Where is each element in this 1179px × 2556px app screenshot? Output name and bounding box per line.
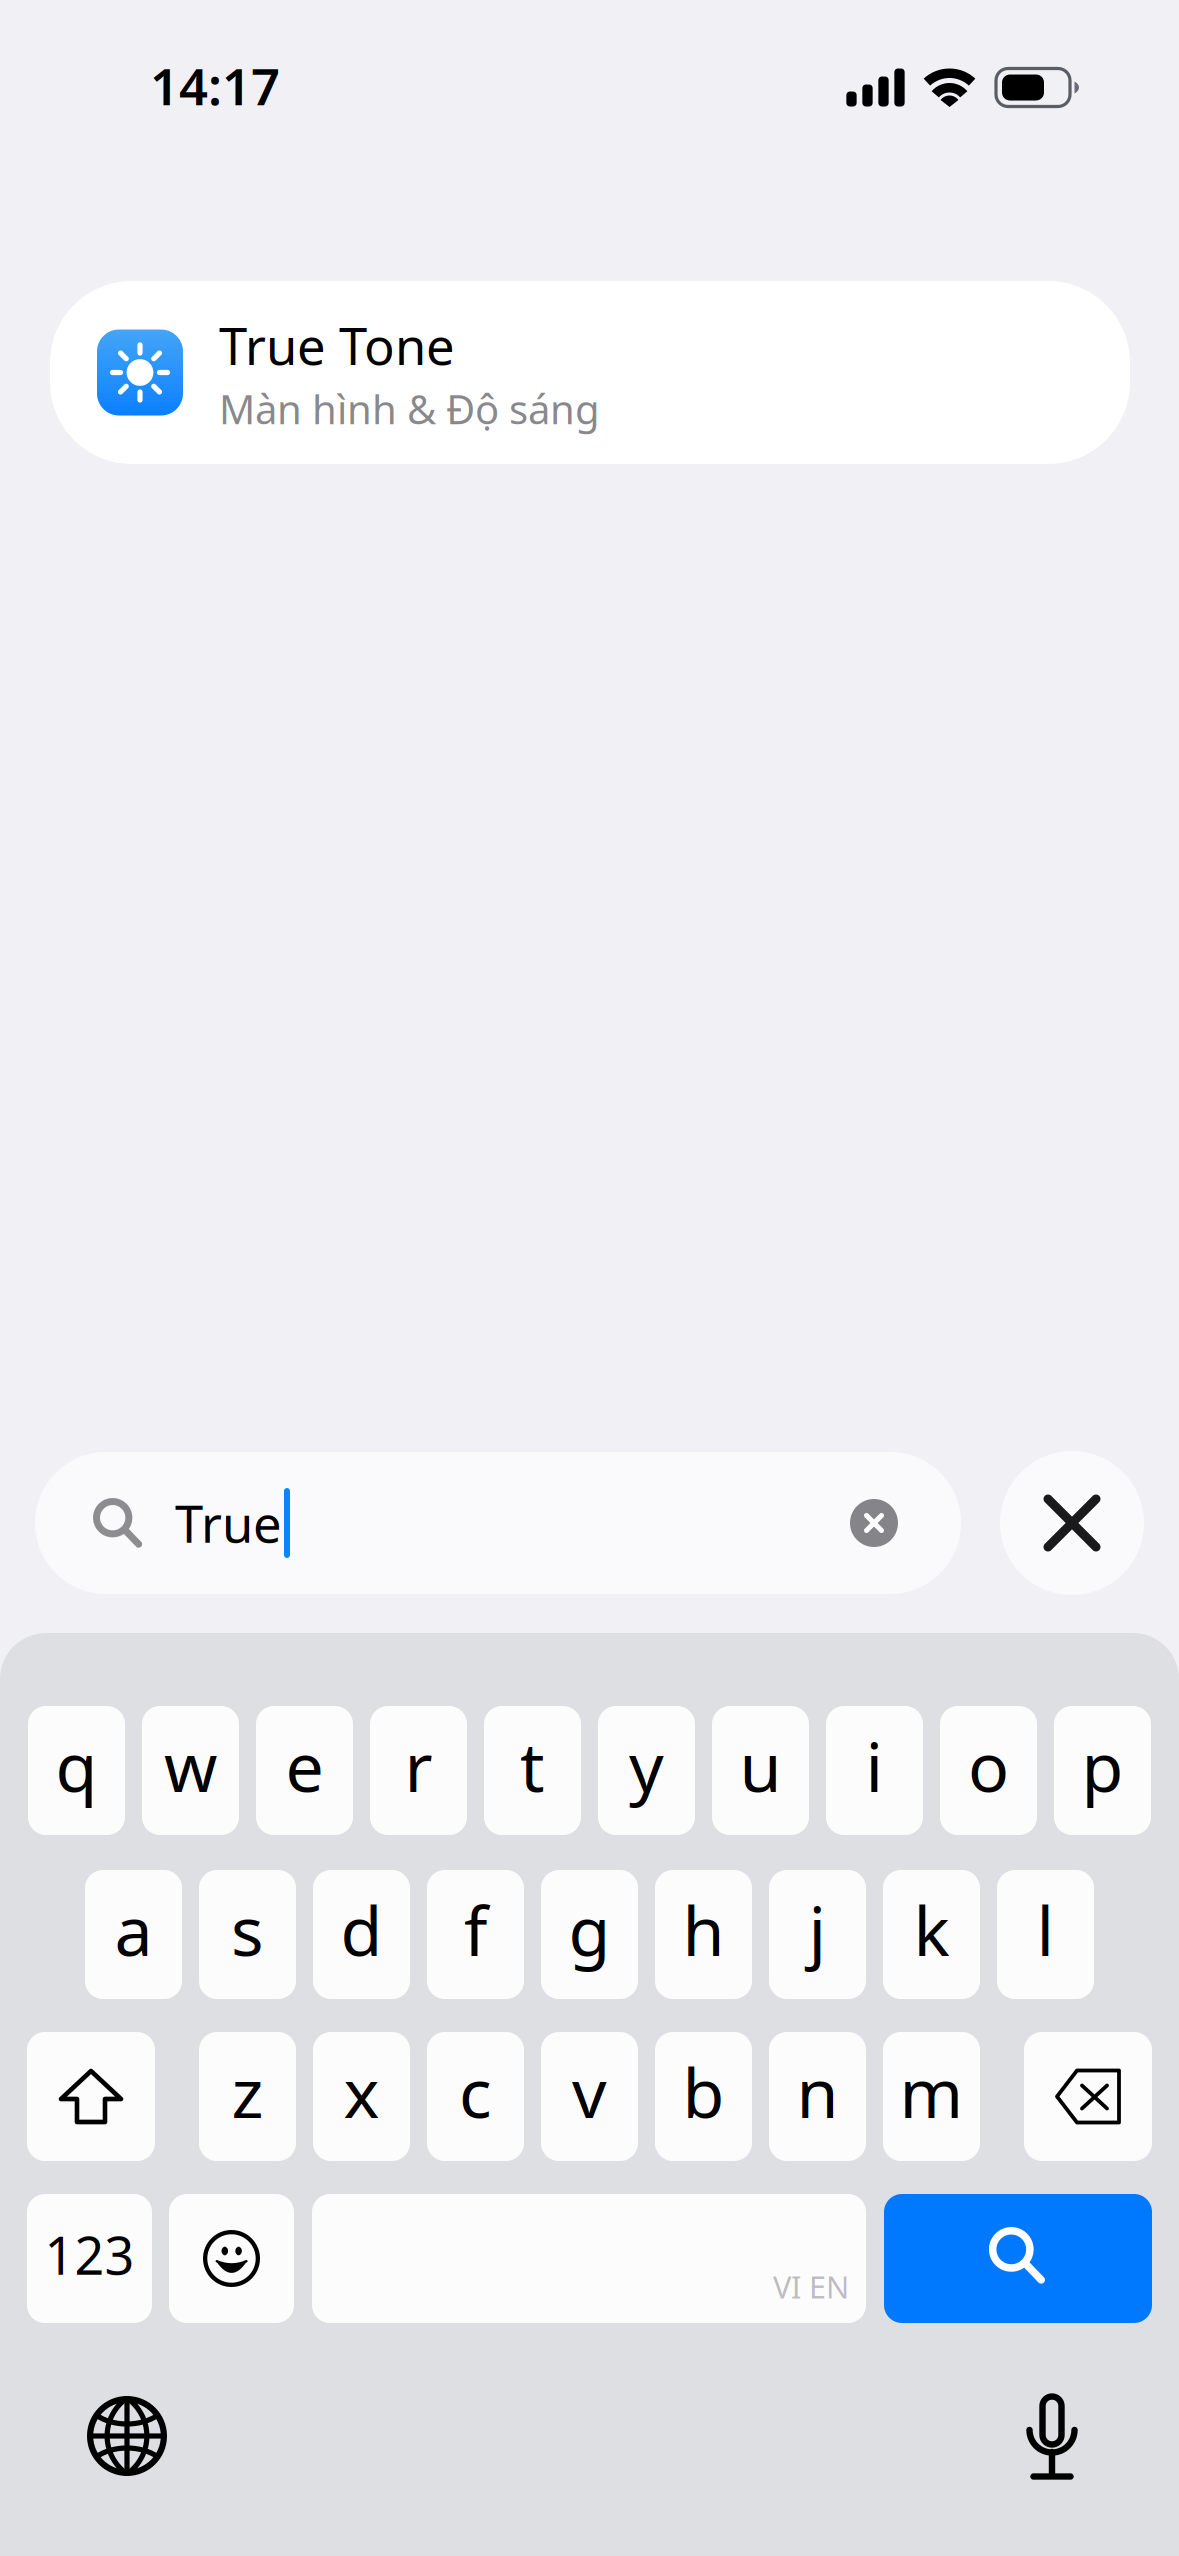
button[interactable]: p — [1054, 1706, 1151, 1835]
staticText: m — [899, 2046, 963, 2137]
button[interactable]: r — [370, 1706, 467, 1835]
staticText: VI EN — [773, 2266, 849, 2307]
button[interactable]: b — [655, 2032, 752, 2161]
button[interactable]: d — [313, 1870, 410, 1999]
staticText: t — [520, 1720, 545, 1811]
button[interactable]: e — [256, 1706, 353, 1835]
button[interactable]: q — [28, 1706, 125, 1835]
button[interactable]: k — [883, 1870, 980, 1999]
button[interactable]: t — [484, 1706, 581, 1835]
button[interactable]: True Tone — [50, 281, 1130, 464]
staticText: p — [1081, 1720, 1123, 1811]
staticText: 123 — [44, 2220, 134, 2289]
button[interactable]: Emoji — [169, 2194, 294, 2323]
staticText: l — [1036, 1884, 1054, 1975]
staticText: c — [459, 2046, 492, 2137]
staticText: d — [340, 1884, 382, 1975]
staticText: i — [865, 1720, 883, 1811]
button[interactable]: i — [826, 1706, 923, 1835]
button[interactable]: m — [883, 2032, 980, 2161]
button[interactable]: l — [997, 1870, 1094, 1999]
button[interactable]: o — [940, 1706, 1037, 1835]
staticText: x — [343, 2046, 379, 2137]
staticText: e — [285, 1720, 323, 1811]
button[interactable]: Space — [312, 2194, 866, 2323]
button[interactable]: 123 — [27, 2194, 152, 2323]
staticText: k — [913, 1884, 949, 1975]
staticText: s — [231, 1884, 264, 1975]
button[interactable]: f — [427, 1870, 524, 1999]
staticText: 14:17 — [150, 52, 280, 119]
staticText: r — [404, 1720, 432, 1811]
button[interactable]: u — [712, 1706, 809, 1835]
button[interactable]: z — [199, 2032, 296, 2161]
button[interactable]: g — [541, 1870, 638, 1999]
button[interactable]: n — [769, 2032, 866, 2161]
button[interactable]: x — [313, 2032, 410, 2161]
button[interactable]: a — [85, 1870, 182, 1999]
staticText: j — [808, 1884, 826, 1975]
button[interactable]: w — [142, 1706, 239, 1835]
button[interactable]: c — [427, 2032, 524, 2161]
staticText: o — [968, 1720, 1009, 1811]
button[interactable]: s — [199, 1870, 296, 1999]
staticText: True — [175, 1489, 282, 1557]
staticText: n — [796, 2046, 838, 2137]
staticText: h — [682, 1884, 724, 1975]
staticText: g — [568, 1884, 610, 1975]
staticText: z — [231, 2046, 263, 2137]
button[interactable]: Delete — [1024, 2032, 1152, 2161]
staticText: q — [55, 1720, 97, 1811]
staticText: w — [164, 1720, 217, 1811]
staticText: b — [682, 2046, 724, 2137]
button[interactable]: Close search — [1000, 1451, 1144, 1595]
button[interactable]: v — [541, 2032, 638, 2161]
staticText: u — [739, 1720, 781, 1811]
button[interactable]: y — [598, 1706, 695, 1835]
button[interactable]: Switch keyboard — [73, 2378, 181, 2494]
staticText: v — [572, 2046, 607, 2137]
button[interactable]: Search — [884, 2194, 1152, 2323]
button[interactable]: j — [769, 1870, 866, 1999]
staticText: a — [114, 1884, 152, 1975]
staticText: True Tone — [219, 312, 455, 379]
button[interactable]: True — [35, 1452, 961, 1594]
button[interactable]: Shift — [27, 2032, 155, 2161]
staticText: y — [629, 1720, 664, 1811]
staticText: f — [464, 1884, 487, 1975]
button[interactable]: Dictation — [998, 2378, 1106, 2494]
staticText: Màn hình & Độ sáng — [219, 382, 600, 435]
button[interactable]: h — [655, 1870, 752, 1999]
